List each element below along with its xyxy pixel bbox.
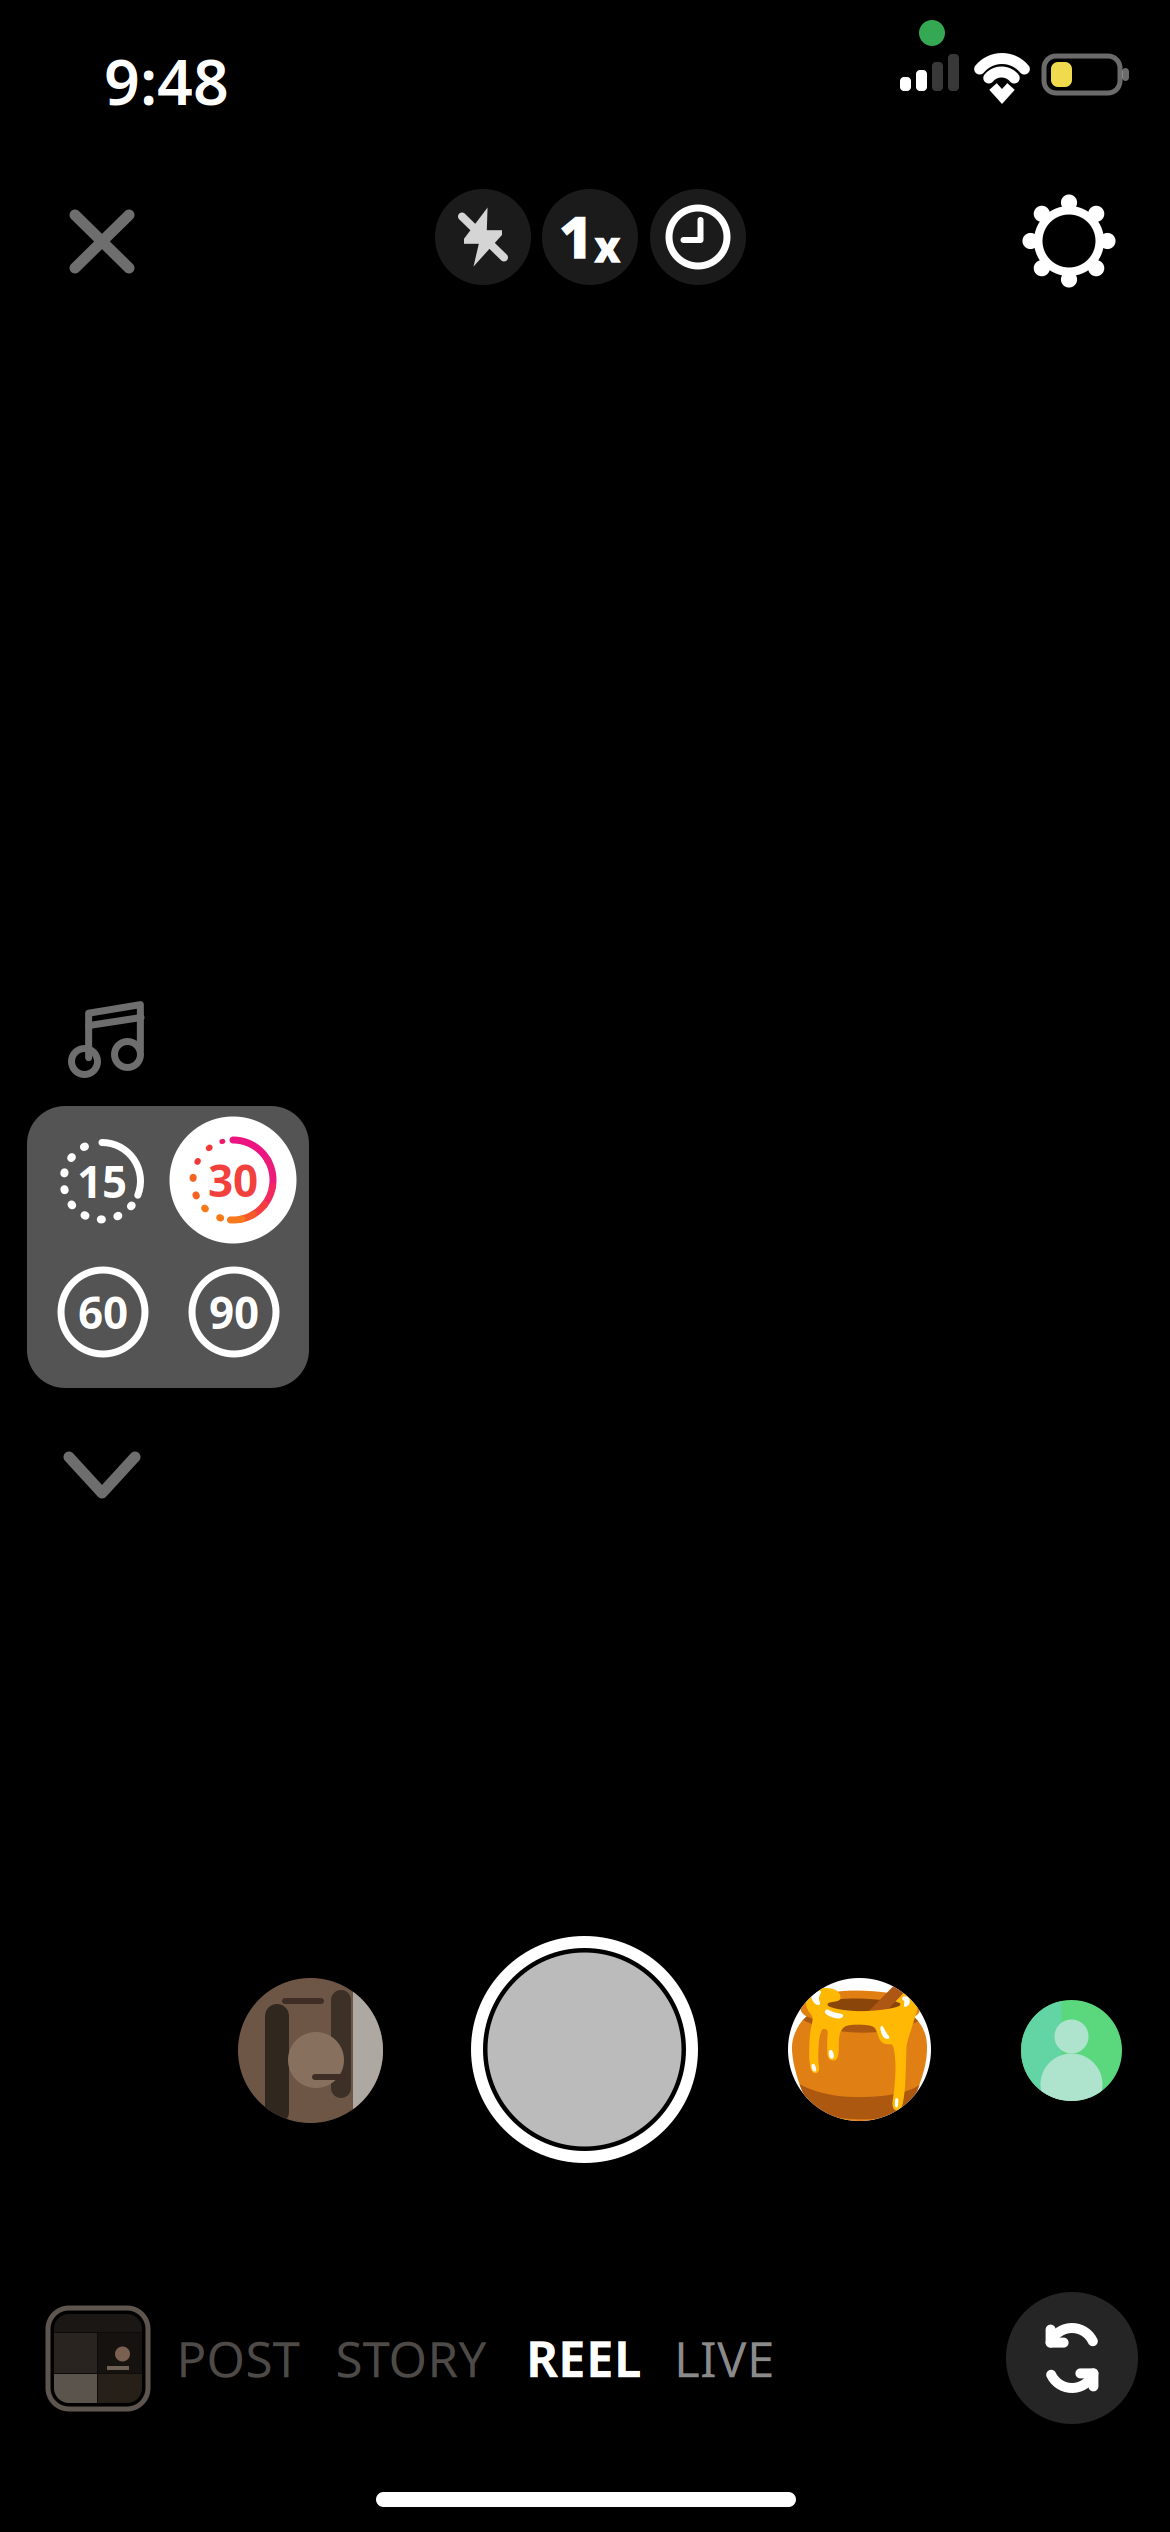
button[interactable]: Close (47, 187, 157, 296)
staticText: LIVE (674, 2325, 774, 2391)
button[interactable]: Settings (1021, 193, 1117, 289)
staticText: 🍯 (761, 1960, 957, 2139)
button[interactable]: REEL (484, 2328, 684, 2388)
button[interactable]: Collapse (45, 1433, 159, 1517)
button[interactable]: Flip camera (1006, 2292, 1138, 2424)
staticText: 1 (558, 197, 592, 275)
button[interactable]: Avatar effect (1021, 2000, 1122, 2101)
button[interactable]: Zoom 1x (542, 189, 638, 285)
button[interactable]: Add music (43, 975, 152, 1087)
staticText: REEL (526, 2325, 642, 2391)
button[interactable]: 30 (169, 1116, 296, 1243)
staticText: x (593, 216, 621, 275)
button[interactable]: LIVE (624, 2328, 824, 2388)
staticText: 15 (77, 1152, 127, 1210)
button[interactable]: STORY (311, 2328, 511, 2388)
staticText: 30 (208, 1151, 258, 1209)
button[interactable]: Honey effect (788, 1978, 931, 2121)
staticText: STORY (335, 2325, 486, 2391)
button[interactable]: 60 (39, 1248, 166, 1375)
button[interactable]: 90 (170, 1248, 297, 1375)
button[interactable]: Record (471, 1936, 698, 2163)
button[interactable]: Timer (650, 189, 746, 285)
staticText: POST (176, 2325, 299, 2391)
staticText: 90 (209, 1283, 259, 1341)
button[interactable]: 15 (38, 1117, 165, 1244)
button[interactable]: Flash off (435, 189, 531, 285)
staticText: 60 (78, 1283, 128, 1341)
button[interactable]: Gallery (48, 2308, 148, 2409)
button[interactable]: POST (138, 2328, 338, 2388)
staticText: 9:48 (104, 39, 229, 122)
button[interactable]: Effect preview (238, 1978, 383, 2123)
